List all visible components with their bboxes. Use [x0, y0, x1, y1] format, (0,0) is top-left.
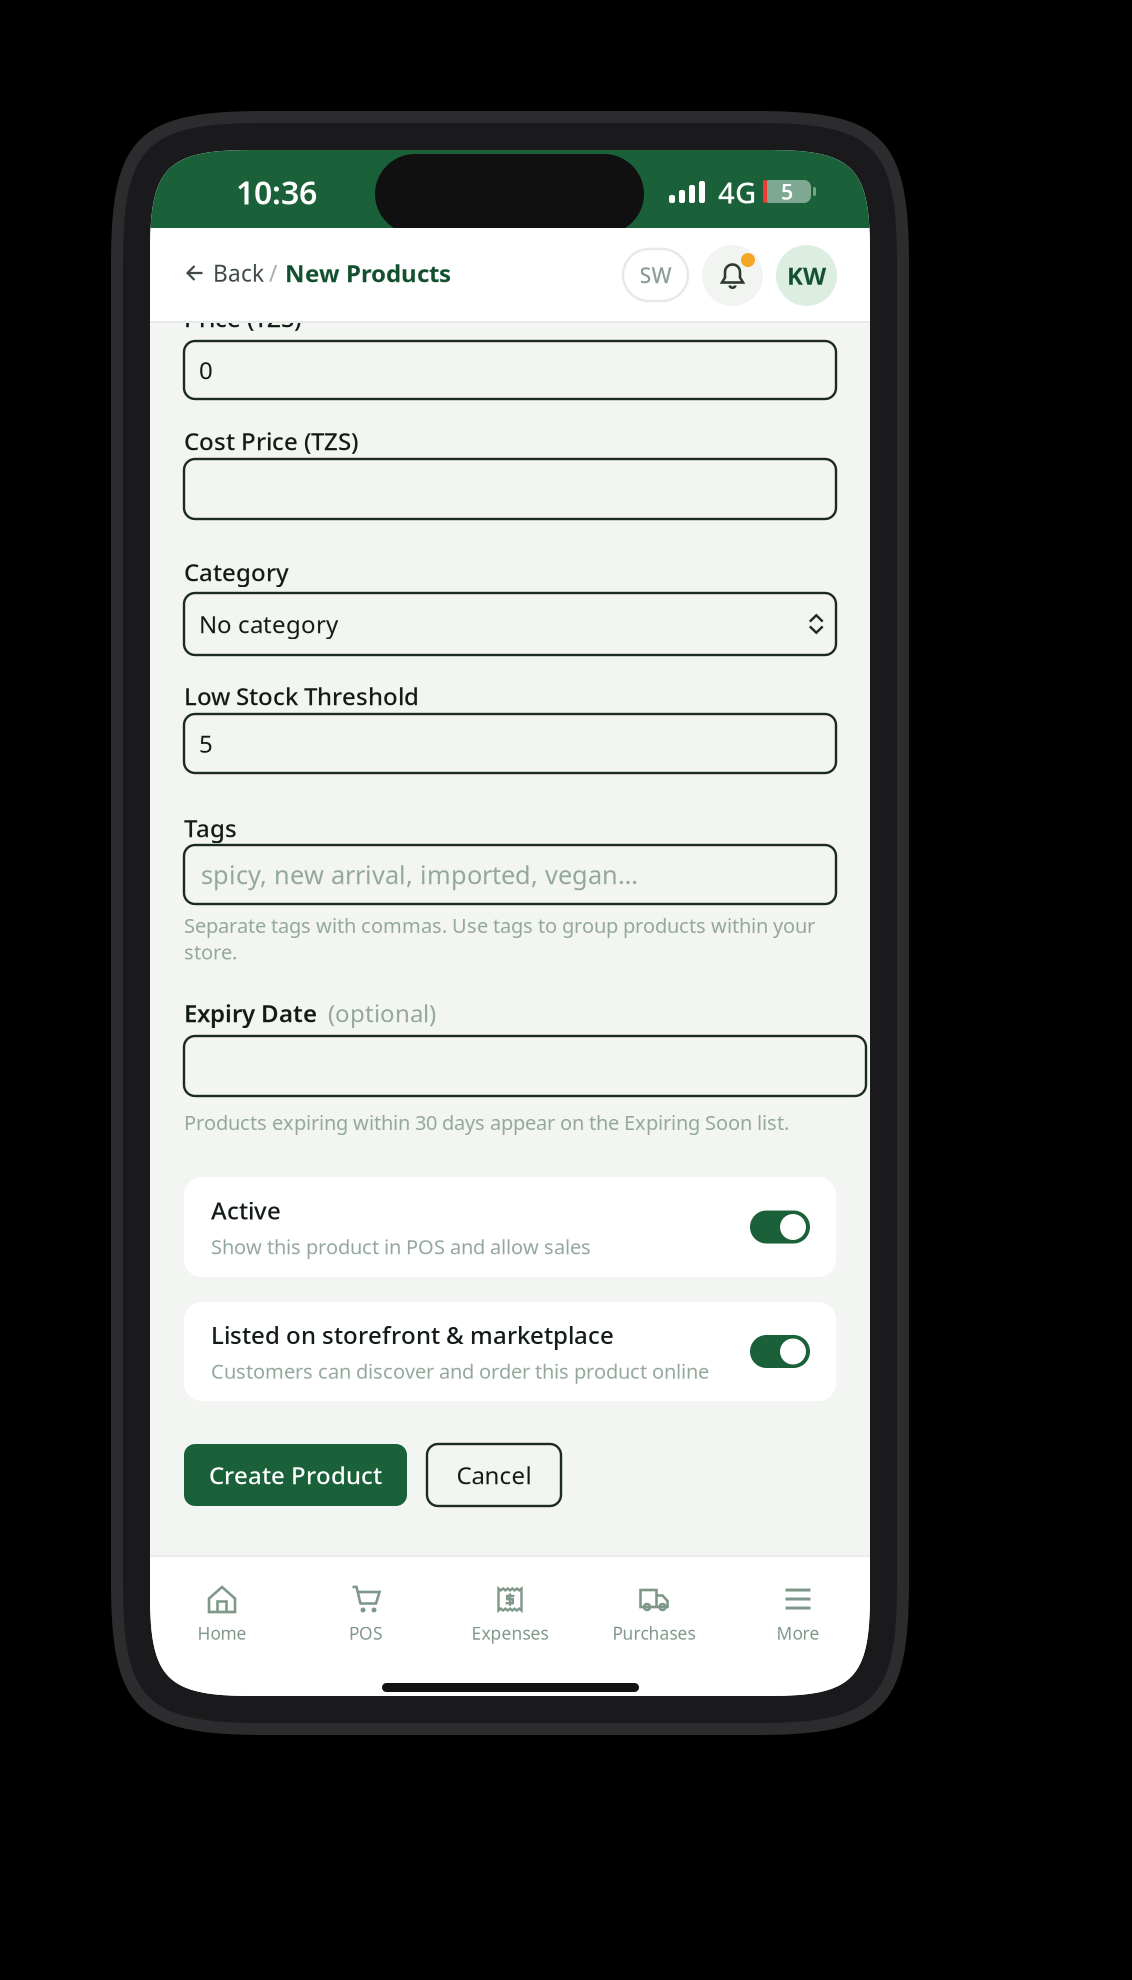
staticText: Customers can discover and order this pr… — [211, 1358, 709, 1384]
button[interactable] — [184, 1036, 866, 1096]
staticText: 5 — [199, 728, 213, 759]
button[interactable]: Expenses — [438, 1555, 582, 1651]
staticText: More — [776, 1621, 819, 1644]
staticText: Home — [197, 1621, 246, 1644]
button[interactable]: Purchases — [582, 1555, 726, 1651]
staticText: Show this product in POS and allow sales — [211, 1233, 591, 1260]
button[interactable]: 0 — [184, 341, 836, 399]
button[interactable]: No category — [184, 593, 836, 655]
staticText: (optional) — [328, 997, 436, 1029]
staticText: New Products — [285, 257, 451, 289]
button[interactable]: 5 — [184, 714, 836, 773]
button[interactable] — [184, 459, 836, 519]
staticText: 10:36 — [236, 171, 317, 213]
button[interactable]: Active — [184, 1177, 836, 1277]
staticText: Expiry Date — [184, 997, 317, 1029]
staticText: Listed on storefront & marketplace — [211, 1319, 614, 1351]
staticText: Purchases — [612, 1621, 695, 1644]
staticText: / — [269, 258, 277, 288]
staticText: Products expiring within 30 days appear … — [184, 1109, 789, 1136]
staticText: Expenses — [471, 1621, 548, 1644]
staticText: Low Stock Threshold — [184, 680, 419, 712]
button[interactable]: POS — [294, 1555, 438, 1651]
button[interactable]: Create Product — [184, 1444, 407, 1506]
button[interactable]: Notifications — [702, 245, 763, 306]
staticText: spicy, new arrival, imported, vegan… — [201, 858, 638, 891]
button[interactable]: Back — [186, 253, 264, 293]
staticText: SW — [639, 261, 671, 289]
staticText: 5 — [781, 177, 793, 206]
staticText: Cost Price (TZS) — [184, 425, 358, 457]
button[interactable]: spicy, new arrival, imported, vegan… — [184, 845, 836, 904]
button[interactable]: New Products — [285, 253, 451, 293]
staticText: Price (TZS) — [184, 302, 301, 334]
staticText: 0 — [199, 354, 213, 386]
button[interactable]: More — [726, 1555, 870, 1651]
staticText: Tags — [184, 812, 237, 844]
button[interactable]: Listed on storefront & marketplace — [184, 1302, 836, 1401]
staticText: Separate tags with commas. Use tags to g… — [184, 912, 815, 965]
staticText: Active — [211, 1194, 281, 1226]
staticText: KW — [787, 260, 826, 291]
staticText: Back — [213, 258, 264, 288]
staticText: Create Product — [209, 1459, 382, 1491]
staticText: Category — [184, 556, 289, 588]
staticText: Cancel — [456, 1459, 531, 1491]
staticText: No category — [199, 608, 338, 640]
button[interactable]: KW — [776, 245, 837, 306]
staticText: 4G — [718, 172, 756, 211]
button[interactable]: Cancel — [427, 1444, 561, 1506]
button[interactable]: Home — [150, 1555, 294, 1651]
button[interactable]: SW — [623, 249, 688, 301]
staticText: POS — [349, 1621, 383, 1644]
